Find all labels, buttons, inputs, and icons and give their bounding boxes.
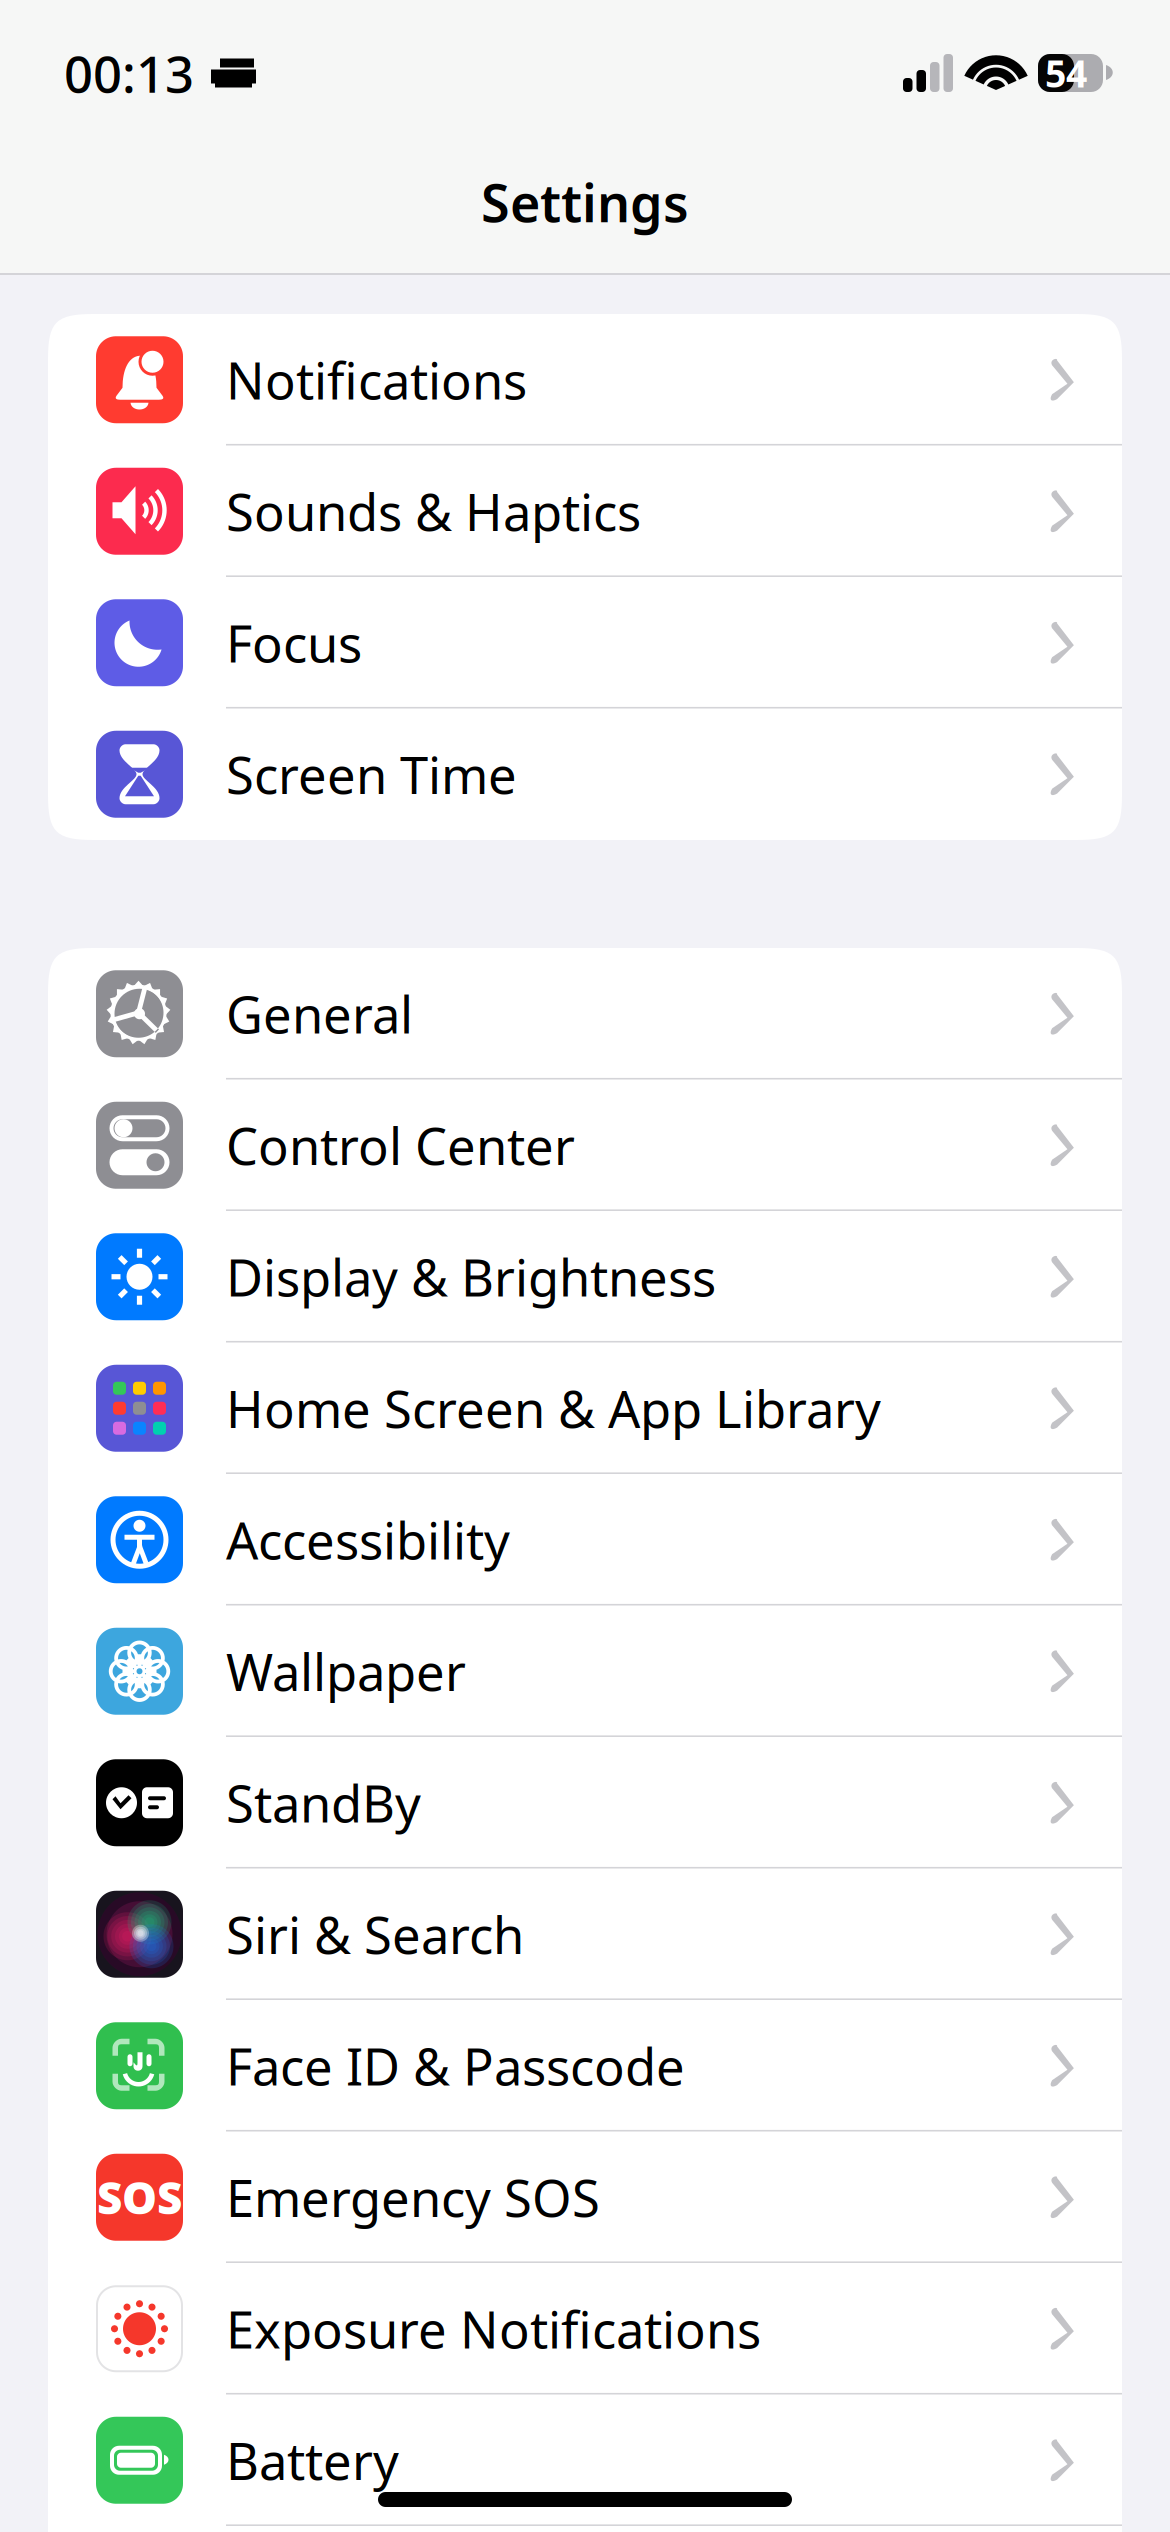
button[interactable]: Focus — [48, 577, 1122, 708]
staticText: Screen Time — [226, 741, 517, 808]
staticText: Home Screen & App Library — [226, 1375, 881, 1442]
button[interactable]: SOS — [48, 2131, 1122, 2263]
staticText: Display & Brightness — [226, 1243, 716, 1310]
button[interactable]: Wallpaper — [48, 1605, 1122, 1737]
staticText: Exposure Notifications — [226, 2295, 761, 2362]
staticText: Notifications — [226, 346, 527, 413]
staticText: Battery — [226, 2427, 399, 2494]
staticText: Settings — [481, 167, 689, 237]
staticText: Accessibility — [226, 1506, 510, 1573]
staticText: StandBy — [226, 1769, 421, 1836]
staticText: 54 — [1045, 48, 1087, 98]
button[interactable]: General — [48, 948, 1122, 1079]
button[interactable]: Display & Brightness — [48, 1211, 1122, 1342]
staticText: Siri & Search — [226, 1901, 524, 1968]
staticText: Control Center — [226, 1112, 575, 1179]
staticText: 00:13 — [64, 39, 194, 107]
button[interactable]: Notifications — [48, 314, 1122, 445]
staticText: General — [226, 980, 413, 1047]
button[interactable]: Accessibility — [48, 1474, 1122, 1605]
staticText: SOS — [97, 2168, 182, 2226]
staticText: Emergency SOS — [226, 2164, 600, 2231]
staticText: Focus — [226, 609, 362, 676]
button[interactable]: Siri & Search — [48, 1868, 1122, 2000]
button[interactable]: Control Center — [48, 1079, 1122, 1211]
button[interactable]: Exposure Notifications — [48, 2263, 1122, 2394]
button[interactable]: Sounds & Haptics — [48, 445, 1122, 577]
button[interactable]: Face ID & Passcode — [48, 2000, 1122, 2131]
staticText: Sounds & Haptics — [226, 478, 641, 545]
staticText: Wallpaper — [226, 1638, 466, 1705]
button[interactable]: Battery — [48, 2394, 1122, 2526]
button[interactable]: Screen Time — [48, 708, 1122, 840]
staticText: Face ID & Passcode — [226, 2032, 685, 2099]
button[interactable]: Home Screen & App Library — [48, 1342, 1122, 1474]
button[interactable]: StandBy — [48, 1737, 1122, 1868]
